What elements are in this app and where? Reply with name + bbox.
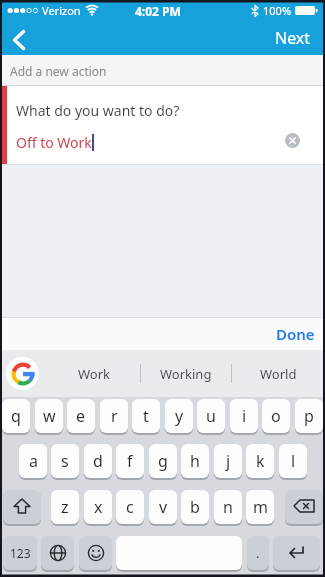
staticText: 4:02 PM bbox=[135, 3, 181, 19]
staticText: Work bbox=[78, 365, 111, 383]
button[interactable]: World bbox=[232, 350, 324, 397]
staticText: w bbox=[43, 405, 56, 427]
staticText: y bbox=[175, 405, 184, 427]
staticText: i bbox=[242, 405, 247, 427]
button[interactable]: t bbox=[132, 399, 160, 433]
button[interactable]: l bbox=[279, 444, 307, 478]
button[interactable]: v bbox=[149, 490, 177, 524]
button[interactable]: k bbox=[246, 444, 274, 478]
staticText: d bbox=[93, 450, 103, 472]
staticText: v bbox=[159, 496, 168, 518]
staticText: j bbox=[226, 450, 231, 472]
button[interactable]: z bbox=[51, 490, 79, 524]
button[interactable]: w bbox=[35, 399, 63, 433]
staticText: m bbox=[253, 496, 268, 518]
staticText: l bbox=[291, 450, 296, 472]
staticText: s bbox=[61, 450, 69, 472]
staticText: f bbox=[127, 450, 133, 472]
button[interactable]: 123 bbox=[3, 536, 37, 570]
button[interactable]: Done bbox=[276, 324, 315, 344]
button[interactable] bbox=[6, 357, 39, 390]
button[interactable]: c bbox=[116, 490, 144, 524]
staticText: g bbox=[158, 450, 168, 472]
staticText: What do you want to do? bbox=[16, 101, 180, 120]
button[interactable]: o bbox=[262, 399, 290, 433]
staticText: Done bbox=[276, 324, 315, 344]
button[interactable]: y bbox=[165, 399, 193, 433]
button[interactable] bbox=[10, 28, 28, 52]
staticText: . bbox=[256, 544, 260, 562]
button[interactable]: e bbox=[67, 399, 95, 433]
staticText: k bbox=[256, 450, 265, 472]
staticText: o bbox=[271, 405, 281, 427]
staticText: 100% bbox=[263, 3, 292, 18]
button[interactable]: x bbox=[84, 490, 112, 524]
button[interactable] bbox=[116, 536, 242, 570]
staticText: t bbox=[143, 405, 149, 427]
button[interactable]: j bbox=[214, 444, 242, 478]
staticText: Verizon bbox=[42, 3, 81, 18]
staticText: c bbox=[126, 496, 134, 518]
button[interactable] bbox=[285, 133, 300, 148]
staticText: x bbox=[94, 496, 103, 518]
staticText: e bbox=[76, 405, 86, 427]
button[interactable] bbox=[79, 536, 112, 570]
button[interactable]: q bbox=[2, 399, 30, 433]
button[interactable]: f bbox=[116, 444, 144, 478]
button[interactable] bbox=[3, 490, 41, 524]
button[interactable]: Next bbox=[275, 27, 311, 49]
button[interactable]: s bbox=[51, 444, 79, 478]
button[interactable]: d bbox=[84, 444, 112, 478]
button[interactable]: i bbox=[230, 399, 258, 433]
staticText: h bbox=[190, 450, 200, 472]
staticText: Off to Work bbox=[16, 133, 92, 152]
button[interactable] bbox=[41, 536, 74, 570]
staticText: n bbox=[223, 496, 233, 518]
staticText: World bbox=[260, 365, 297, 383]
staticText: r bbox=[111, 405, 118, 427]
button[interactable] bbox=[273, 536, 320, 570]
button[interactable]: Work bbox=[48, 350, 140, 397]
staticText: Working bbox=[160, 365, 212, 383]
button[interactable]: g bbox=[149, 444, 177, 478]
staticText: a bbox=[29, 450, 38, 472]
staticText: Next bbox=[275, 27, 311, 49]
button[interactable]: n bbox=[214, 490, 242, 524]
staticText: b bbox=[190, 496, 200, 518]
button[interactable]: r bbox=[100, 399, 128, 433]
button[interactable]: b bbox=[181, 490, 209, 524]
staticText: 123 bbox=[10, 545, 31, 561]
staticText: q bbox=[11, 405, 21, 427]
staticText: u bbox=[206, 405, 216, 427]
button[interactable]: a bbox=[19, 444, 47, 478]
button[interactable]: . bbox=[247, 536, 269, 570]
button[interactable]: p bbox=[295, 399, 323, 433]
button[interactable]: Working bbox=[141, 350, 231, 397]
button[interactable]: h bbox=[181, 444, 209, 478]
staticText: p bbox=[304, 405, 314, 427]
button[interactable]: u bbox=[197, 399, 225, 433]
button[interactable]: m bbox=[246, 490, 274, 524]
button[interactable] bbox=[285, 490, 323, 524]
staticText: Add a new action bbox=[10, 63, 107, 79]
staticText: z bbox=[61, 496, 69, 518]
